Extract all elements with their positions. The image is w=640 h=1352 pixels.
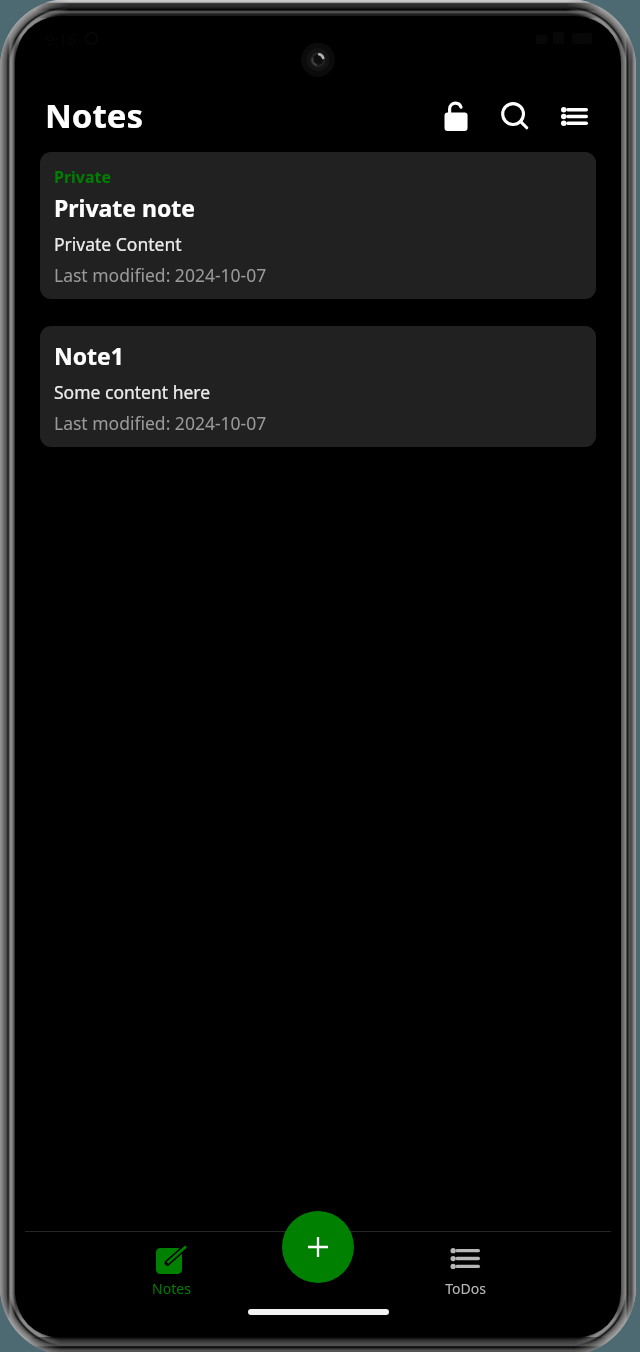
button[interactable]: Private	[40, 152, 596, 299]
button[interactable]: Notes	[24, 1242, 318, 1298]
staticText: Some content here	[54, 380, 211, 404]
staticText: Last modified: 2024-10-07	[54, 411, 267, 435]
staticText: Last modified: 2024-10-07	[54, 263, 267, 287]
staticText: Private Content	[54, 232, 182, 256]
button[interactable]: Menu	[552, 94, 596, 138]
button[interactable]: ToDos	[318, 1242, 612, 1298]
button[interactable]: Note1	[40, 326, 596, 447]
button[interactable]: Add note	[282, 1211, 354, 1283]
staticText: Notes	[45, 93, 144, 138]
button[interactable]: Search	[493, 94, 537, 138]
staticText: Note1	[54, 340, 124, 371]
staticText: Notes	[152, 1279, 191, 1298]
button[interactable]: Lock notes	[434, 94, 478, 138]
staticText: Private	[54, 166, 112, 188]
staticText: Private note	[54, 192, 196, 223]
staticText: ToDos	[445, 1279, 486, 1298]
